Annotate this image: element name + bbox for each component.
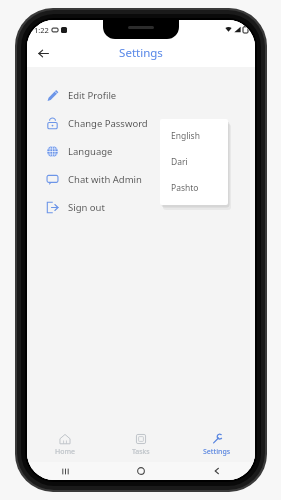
staticText: Dari [171,156,188,168]
button[interactable]: Language [27,137,255,165]
button[interactable]: Back [179,462,255,480]
button[interactable]: Dari [160,149,228,175]
button[interactable]: Pashto [160,175,228,201]
button[interactable]: Home [103,462,179,480]
staticText: Settings [203,447,231,457]
staticText: Home [55,447,75,457]
staticText: Settings [119,45,163,61]
staticText: Pashto [171,182,199,194]
staticText: Change Password [68,117,148,130]
button[interactable]: Settings [179,428,255,462]
staticText: 1:22 [34,25,49,35]
staticText: Chat with Admin [68,173,142,186]
button[interactable]: Change Password [27,109,255,137]
staticText: Tasks [132,447,150,457]
button[interactable]: Home [27,428,103,462]
button[interactable]: Back [32,42,54,64]
button[interactable]: Chat with Admin [27,165,255,193]
staticText: English [171,130,200,142]
staticText: Language [68,145,113,158]
button[interactable]: English [160,123,228,149]
staticText: Edit Profile [68,89,117,102]
button[interactable]: Tasks [103,428,179,462]
button[interactable]: Recent apps [27,462,103,480]
button[interactable]: Edit Profile [27,81,255,109]
button[interactable]: Sign out [27,193,255,221]
staticText: Sign out [68,201,105,214]
